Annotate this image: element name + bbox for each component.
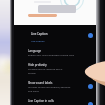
staticText: Language <box>28 49 42 53</box>
staticText: Use Caption <box>31 39 45 42</box>
staticText: Live Caption in calls <box>28 99 54 103</box>
button[interactable]: Hide profanity <box>14 63 96 77</box>
button[interactable]: Show sound labels <box>14 81 96 95</box>
other: Live Caption toggle <box>85 30 95 40</box>
staticText: English only. More languages coming soon <box>28 54 75 57</box>
other: Hide profanity toggle <box>85 63 95 73</box>
button[interactable]: Live Caption <box>14 30 96 45</box>
button[interactable]: Language <box>14 49 96 63</box>
staticText: Hide profanity <box>28 63 47 67</box>
staticText: Profanity will be replaced with a symbol <box>28 68 63 75</box>
staticText: Show sound labels <box>28 81 53 85</box>
button[interactable]: Live Caption in calls <box>14 99 96 105</box>
other: Live Caption in calls toggle <box>85 99 95 105</box>
other: Show sound labels toggle <box>85 81 95 91</box>
staticText: Live Caption <box>31 32 48 36</box>
staticText: Includes sounds like laughter, applause … <box>28 86 71 93</box>
